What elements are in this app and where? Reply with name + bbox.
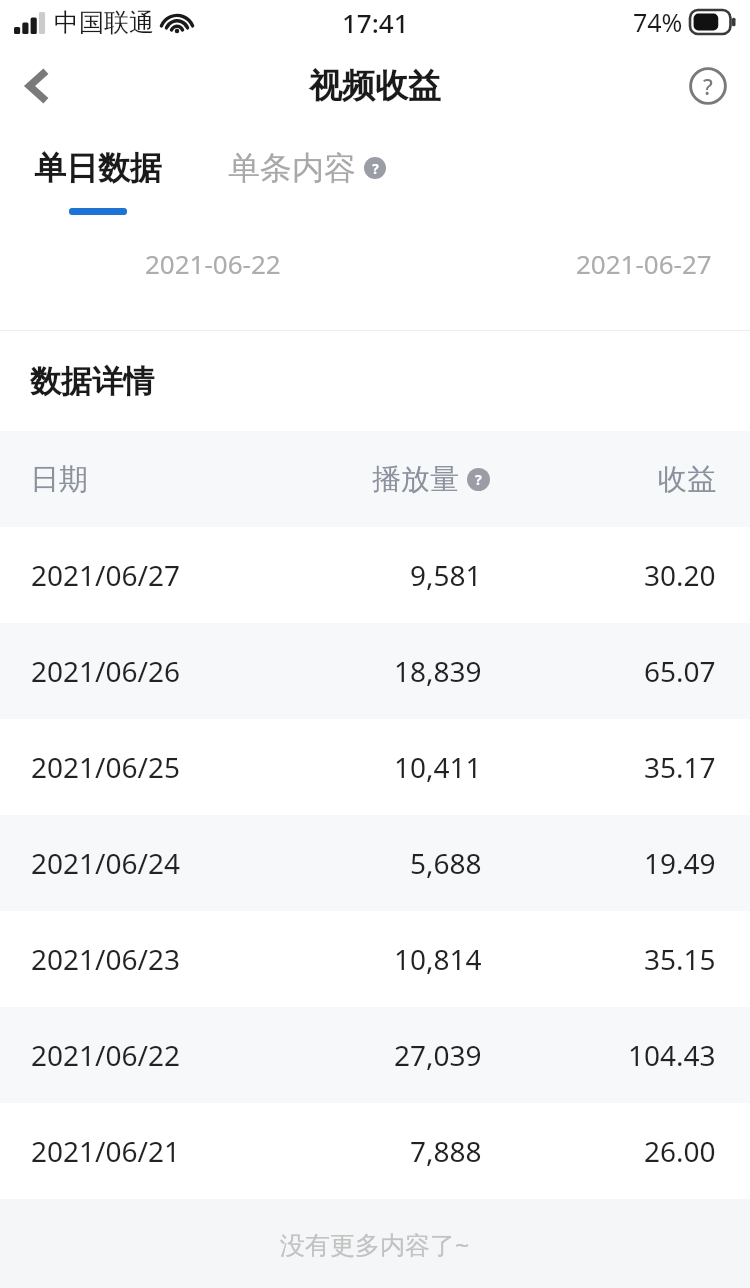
button[interactable]: 2021/06/27 bbox=[0, 527, 750, 623]
button[interactable]: 帮助 bbox=[676, 54, 740, 118]
staticText: 播放量 bbox=[372, 461, 459, 498]
staticText: 2021/06/22 bbox=[31, 1036, 180, 1074]
staticText: 2021/06/24 bbox=[31, 844, 180, 882]
staticText: 2021/06/25 bbox=[31, 748, 180, 786]
staticText: 7,888 bbox=[410, 1132, 482, 1170]
staticText: ? bbox=[372, 159, 379, 178]
staticText: 35.17 bbox=[644, 748, 716, 786]
button[interactable]: 单条内容 bbox=[228, 128, 386, 188]
staticText: 27,039 bbox=[394, 1036, 482, 1074]
staticText: 9,581 bbox=[410, 556, 482, 594]
staticText: 2021/06/27 bbox=[31, 556, 180, 594]
staticText: ? bbox=[703, 71, 713, 101]
staticText: 104.43 bbox=[628, 1036, 716, 1074]
staticText: 日期 bbox=[30, 461, 88, 498]
button[interactable]: 单日数据 bbox=[20, 128, 176, 215]
staticText: 35.15 bbox=[644, 940, 716, 978]
button[interactable]: 2021/06/21 bbox=[0, 1103, 750, 1199]
staticText: 10,411 bbox=[394, 748, 482, 786]
button[interactable]: 2021/06/24 bbox=[0, 815, 750, 911]
staticText: 中国联通 bbox=[54, 7, 154, 38]
staticText: 2021/06/23 bbox=[31, 940, 180, 978]
button[interactable]: 返回 bbox=[0, 49, 74, 123]
staticText: 74% bbox=[633, 5, 683, 39]
staticText: 30.20 bbox=[644, 556, 716, 594]
staticText: 26.00 bbox=[644, 1132, 716, 1170]
staticText: 视频收益 bbox=[309, 65, 441, 107]
staticText: 2021-06-22 bbox=[145, 246, 281, 281]
staticText: 没有更多内容了~ bbox=[280, 1227, 470, 1261]
button[interactable]: 2021/06/22 bbox=[0, 1007, 750, 1103]
staticText: 数据详情 bbox=[30, 362, 154, 401]
staticText: ? bbox=[475, 470, 482, 489]
staticText: 5,688 bbox=[410, 844, 482, 882]
staticText: 2021/06/21 bbox=[31, 1132, 180, 1170]
staticText: 收益 bbox=[658, 461, 716, 498]
staticText: 2021-06-27 bbox=[576, 246, 712, 281]
staticText: 65.07 bbox=[644, 652, 716, 690]
staticText: 18,839 bbox=[394, 652, 482, 690]
button[interactable]: 2021/06/23 bbox=[0, 911, 750, 1007]
button[interactable]: 2021/06/26 bbox=[0, 623, 750, 719]
staticText: 10,814 bbox=[394, 940, 482, 978]
staticText: 19.49 bbox=[644, 844, 716, 882]
staticText: 17:41 bbox=[342, 5, 409, 40]
staticText: 单日数据 bbox=[34, 148, 162, 188]
staticText: 2021/06/26 bbox=[31, 652, 180, 690]
staticText: 单条内容 bbox=[228, 148, 356, 188]
button[interactable]: 2021/06/25 bbox=[0, 719, 750, 815]
